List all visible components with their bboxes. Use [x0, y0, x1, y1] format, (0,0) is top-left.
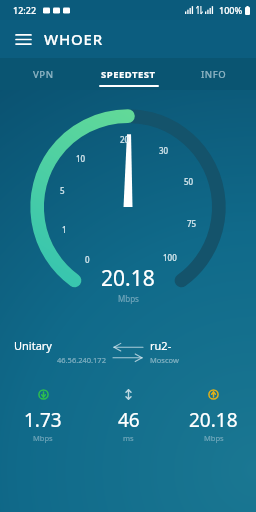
button[interactable]: INFO: [171, 58, 256, 90]
staticText: 100%: [219, 4, 243, 16]
staticText: 1.73: [24, 407, 62, 433]
staticText: Mbps: [204, 433, 224, 443]
staticText: INFO: [201, 68, 227, 81]
staticText: Moscow: [150, 355, 179, 365]
staticText: ms: [123, 433, 134, 443]
button[interactable]: SPEEDTEST: [86, 58, 171, 90]
staticText: 12:22: [13, 4, 37, 16]
button[interactable]: Upload speed: [171, 389, 256, 443]
button[interactable]: Open navigation menu: [6, 22, 40, 56]
staticText: 20: [120, 134, 130, 145]
staticText: Mbps: [33, 433, 53, 443]
staticText: 46: [118, 407, 140, 433]
other: Upload speed: [208, 389, 219, 400]
staticText: ru2-speed.whoer.n…: [150, 338, 242, 353]
button[interactable]: Ping latency: [86, 389, 171, 443]
button[interactable]: Unitary enterprise…: [14, 338, 242, 365]
button[interactable]: VPN: [0, 58, 86, 90]
staticText: 5: [60, 185, 65, 196]
staticText: 75: [187, 218, 197, 229]
staticText: VPN: [33, 68, 54, 81]
staticText: Unitary enterprise…: [14, 338, 106, 353]
other: Ping latency: [123, 389, 134, 400]
staticText: WHOER: [44, 29, 103, 49]
staticText: 20.18: [189, 407, 238, 433]
staticText: 30: [159, 145, 169, 156]
staticText: 46.56.240.172: [57, 355, 106, 365]
button[interactable]: Download speed: [0, 389, 86, 443]
staticText: SPEEDTEST: [101, 68, 156, 81]
staticText: 100: [163, 252, 177, 263]
staticText: Mbps: [118, 293, 139, 304]
staticText: 1: [62, 224, 67, 235]
staticText: 20.18: [101, 264, 155, 293]
staticText: 0: [85, 254, 90, 265]
staticText: 50: [184, 176, 194, 187]
other: Download speed: [38, 389, 49, 400]
staticText: 10: [76, 153, 86, 164]
